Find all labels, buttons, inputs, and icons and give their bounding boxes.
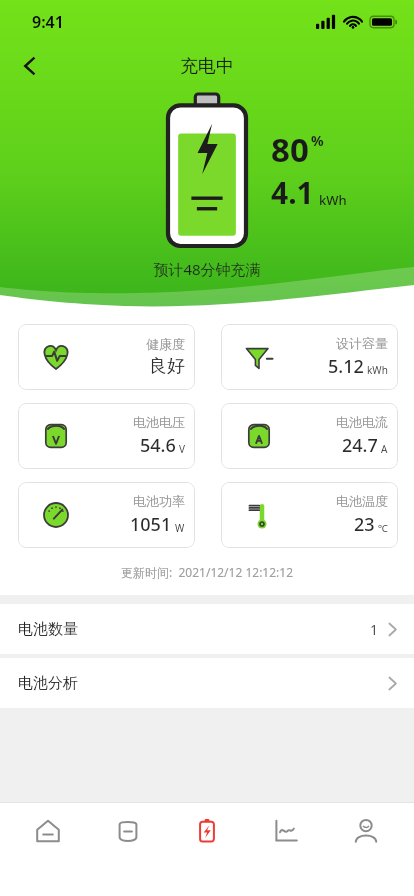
staticText: ℃ (378, 521, 388, 535)
staticText: % (311, 131, 324, 150)
staticText: 健康度 (146, 336, 185, 352)
staticText: 电池电流 (336, 414, 388, 430)
button[interactable]: 电池温度 (221, 482, 398, 548)
button[interactable]: 电池电流 (221, 403, 398, 469)
staticText: 电池功率 (133, 493, 185, 509)
button[interactable]: 电池分析 (0, 658, 414, 708)
staticText: 电池电压 (133, 414, 185, 430)
button[interactable]: 电池电压 (18, 403, 195, 469)
button[interactable]: Profile (335, 806, 397, 856)
staticText: 设计容量 (336, 335, 388, 351)
staticText: 电池温度 (336, 493, 388, 509)
button[interactable]: Device (97, 806, 159, 856)
staticText: 24.7 (342, 433, 378, 458)
staticText: 54.6 (140, 433, 176, 458)
button[interactable]: 电池数量 (0, 604, 414, 654)
button[interactable]: Home (17, 806, 79, 856)
staticText: 23 (354, 512, 375, 537)
staticText: 9:41 (32, 11, 64, 33)
staticText: 1 (370, 620, 379, 639)
staticText: W (175, 521, 185, 535)
staticText: A (381, 442, 388, 456)
staticText: 电池分析 (18, 674, 78, 693)
staticText: 5.12 (328, 354, 364, 379)
button[interactable]: Back (8, 44, 52, 88)
staticText: 1051 (130, 512, 172, 537)
button[interactable]: Battery (176, 806, 238, 856)
button[interactable]: 电池功率 (18, 482, 195, 548)
staticText: 更新时间: 2021/12/12 12:12:12 (121, 564, 294, 580)
button[interactable]: Statistics (255, 806, 317, 856)
button[interactable]: 设计容量 (221, 324, 398, 390)
staticText: 4.1 (271, 172, 314, 213)
staticText: kWh (319, 191, 347, 209)
staticText: 80 (271, 127, 309, 172)
staticText: V (179, 442, 185, 456)
staticText: 预计48分钟充满 (0, 259, 414, 279)
staticText: 良好 (149, 355, 185, 378)
staticText: 充电中 (180, 55, 234, 78)
button[interactable]: 健康度 (18, 324, 195, 390)
staticText: 电池数量 (18, 620, 78, 639)
staticText: kWh (367, 363, 388, 377)
